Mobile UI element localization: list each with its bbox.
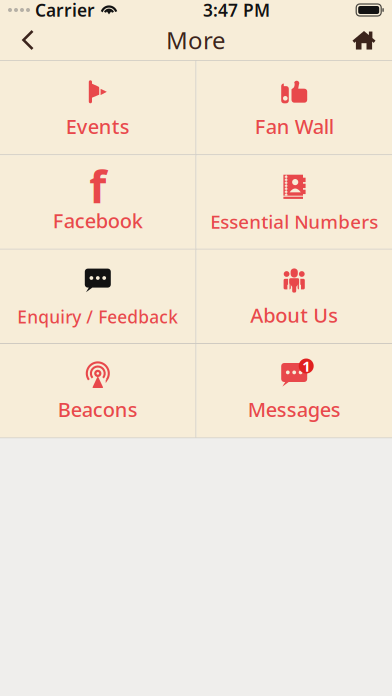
staticText: 3:47 PM — [203, 0, 270, 21]
staticText: Events — [66, 113, 130, 139]
staticText: Beacons — [58, 396, 138, 423]
staticText: 1 — [302, 356, 310, 376]
button[interactable]: Fan Wall — [196, 61, 392, 154]
staticText: About Us — [250, 302, 338, 328]
staticText: f — [89, 157, 106, 215]
button[interactable]: Back — [6, 20, 50, 60]
staticText: Fan Wall — [255, 113, 334, 139]
staticText: Enquiry / Feedback — [17, 305, 178, 328]
button[interactable]: About Us — [196, 250, 392, 343]
button[interactable]: 1 — [196, 344, 392, 438]
staticText: Essential Numbers — [210, 209, 378, 234]
staticText: Messages — [248, 396, 341, 423]
staticText: Facebook — [53, 207, 143, 234]
button[interactable]: Beacons — [0, 344, 196, 438]
button[interactable]: Home — [342, 20, 386, 60]
button[interactable]: f — [0, 155, 196, 249]
staticText: Carrier — [35, 0, 95, 21]
button[interactable]: Events — [0, 61, 196, 154]
button[interactable]: Essential Numbers — [196, 155, 392, 249]
button[interactable]: Enquiry / Feedback — [0, 250, 196, 343]
staticText: More — [166, 24, 226, 56]
